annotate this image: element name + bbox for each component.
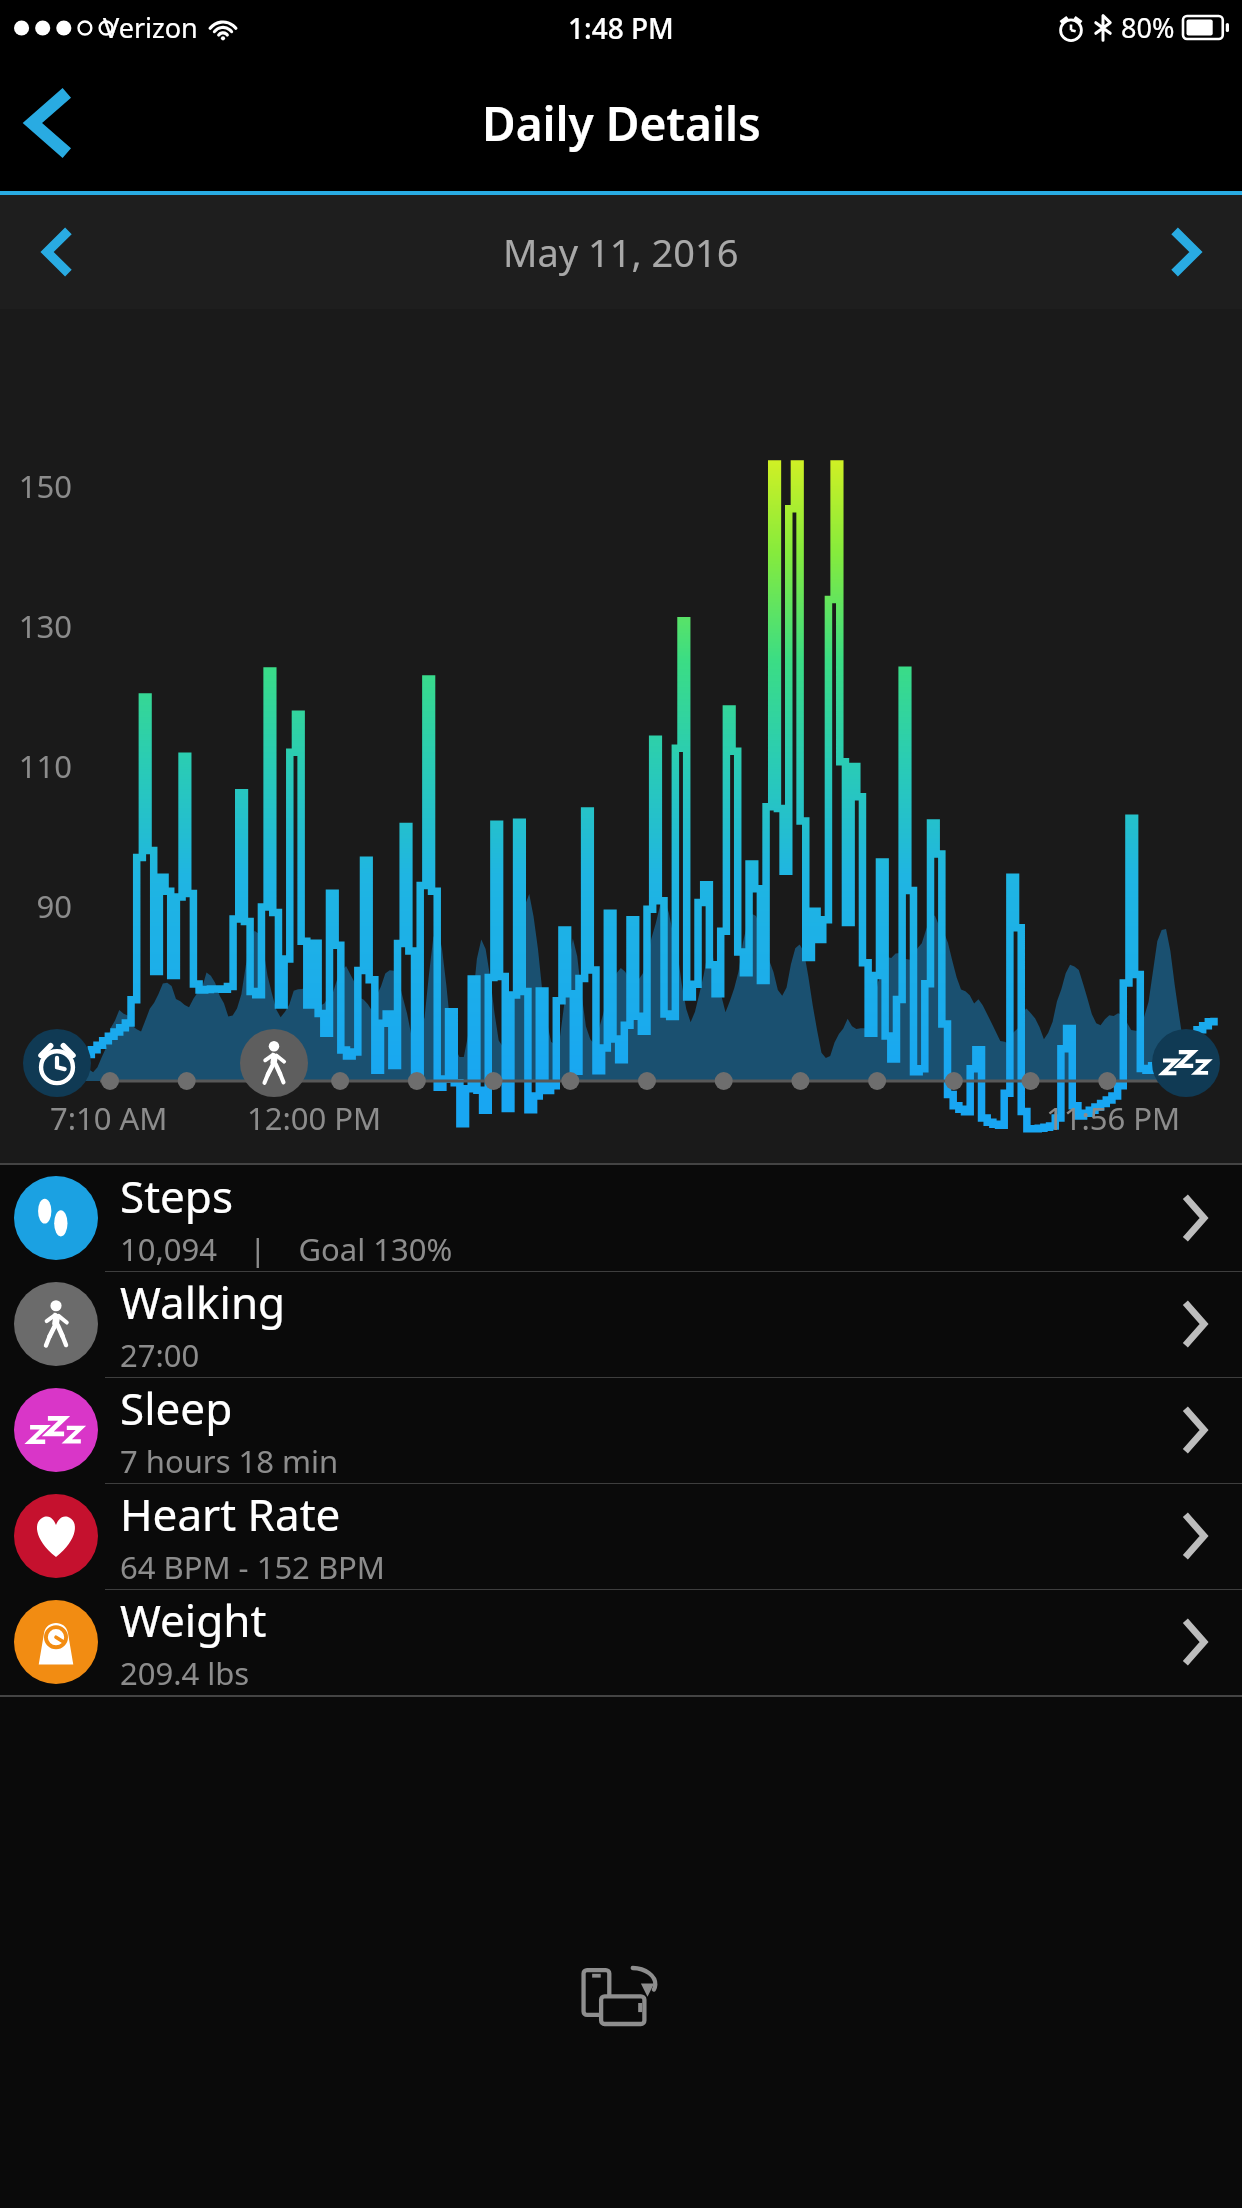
staticText: 209.4 lbs (120, 1652, 250, 1694)
staticText: Sleep (120, 1378, 233, 1438)
staticText: 27:00 (120, 1334, 200, 1376)
button[interactable]: Next day (1127, 195, 1242, 309)
staticText: Walking (120, 1272, 286, 1332)
staticText: Steps (120, 1166, 233, 1226)
button[interactable]: Heart Rate (0, 1483, 1242, 1589)
button[interactable]: Previous day (0, 195, 115, 309)
staticText: 150 (10, 465, 72, 507)
staticText: 110 (10, 745, 72, 787)
staticText: 130 (10, 605, 72, 647)
staticText: 7:10 AM (50, 1097, 168, 1139)
staticText: May 11, 2016 (503, 226, 739, 278)
staticText: Verizon (103, 9, 198, 46)
staticText: 90 (10, 885, 72, 927)
staticText: 1:48 PM (568, 9, 674, 47)
staticText: 12:00 PM (247, 1097, 382, 1139)
button[interactable]: Back (0, 63, 100, 183)
staticText: 64 BPM - 152 BPM (120, 1546, 385, 1588)
staticText: Daily Details (482, 92, 761, 155)
button[interactable]: Weight (0, 1589, 1242, 1695)
button[interactable]: Sleep (0, 1377, 1242, 1483)
staticText: 7 hours 18 min (120, 1440, 339, 1482)
staticText: Heart Rate (120, 1484, 341, 1544)
staticText: 11:56 PM (1046, 1097, 1181, 1139)
button[interactable]: Walking (0, 1271, 1242, 1377)
staticText: 10,094 | Goal 130% (120, 1228, 453, 1270)
button[interactable]: Walking session (240, 1029, 308, 1097)
staticText: 80% (1121, 9, 1175, 46)
button[interactable]: Sleep session (1152, 1029, 1220, 1097)
staticText: Weight (120, 1590, 267, 1650)
button[interactable]: Wake time (23, 1029, 91, 1097)
button[interactable]: Steps (0, 1165, 1242, 1271)
button[interactable]: Rotate screen (561, 1943, 681, 2063)
